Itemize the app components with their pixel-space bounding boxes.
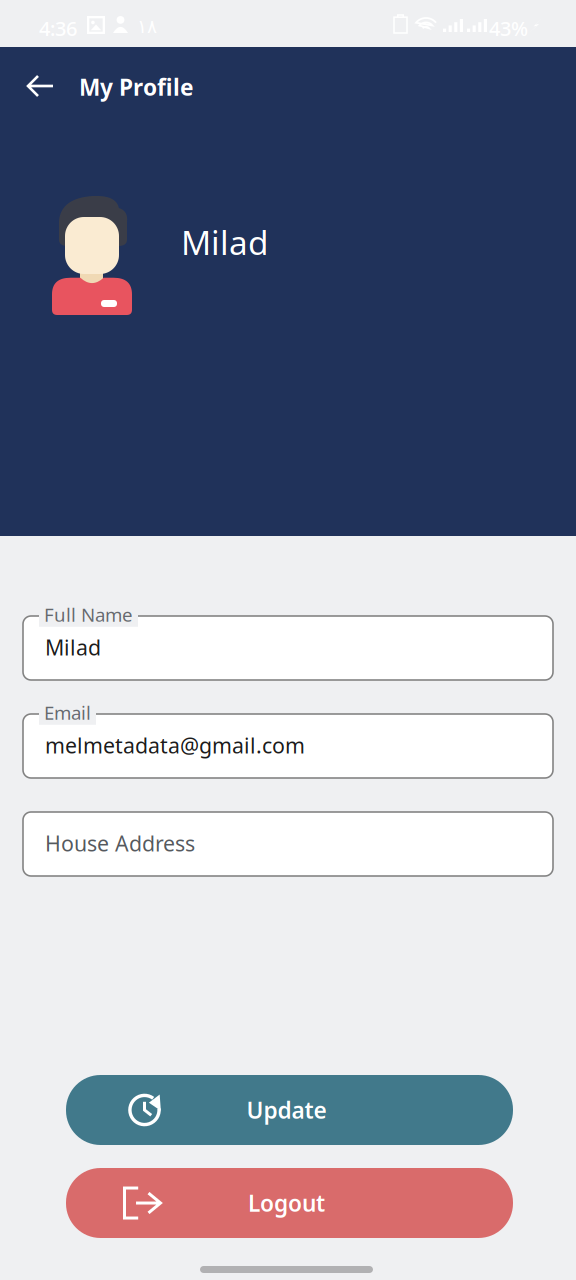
staticText: Logout bbox=[248, 1188, 325, 1218]
button[interactable]: Milad bbox=[23, 616, 553, 680]
staticText: melmetadata@gmail.com bbox=[45, 731, 305, 759]
staticText: House Address bbox=[45, 829, 195, 857]
staticText: Full Name bbox=[44, 602, 133, 627]
button[interactable]: House Address bbox=[23, 812, 553, 876]
button[interactable]: Logout bbox=[66, 1168, 513, 1238]
button[interactable]: Update bbox=[66, 1075, 513, 1145]
staticText: 43% bbox=[489, 15, 528, 42]
staticText: Milad bbox=[181, 220, 269, 264]
staticText: Email bbox=[44, 700, 91, 725]
button[interactable]: Back bbox=[14, 61, 67, 111]
staticText: ١٨ bbox=[137, 16, 157, 37]
staticText: 4:36 bbox=[39, 15, 77, 42]
staticText: My Profile bbox=[79, 72, 194, 102]
staticText: Milad bbox=[45, 633, 101, 661]
staticText: Update bbox=[246, 1095, 326, 1125]
button[interactable]: melmetadata@gmail.com bbox=[23, 714, 553, 778]
